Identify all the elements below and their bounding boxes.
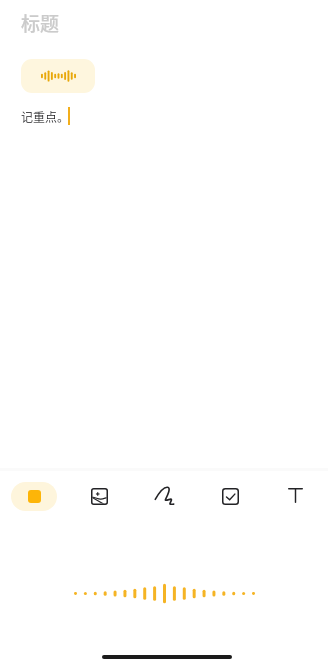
staticText: 标题 xyxy=(21,9,60,37)
button[interactable]: Insert image xyxy=(78,475,120,517)
button[interactable]: Checklist xyxy=(209,475,251,517)
staticText: 记重点。 xyxy=(21,108,70,125)
button[interactable]: Text style xyxy=(274,474,316,516)
button[interactable]: Handwriting xyxy=(143,475,185,517)
button[interactable]: Stop recording xyxy=(11,482,57,511)
button[interactable] xyxy=(21,59,95,93)
